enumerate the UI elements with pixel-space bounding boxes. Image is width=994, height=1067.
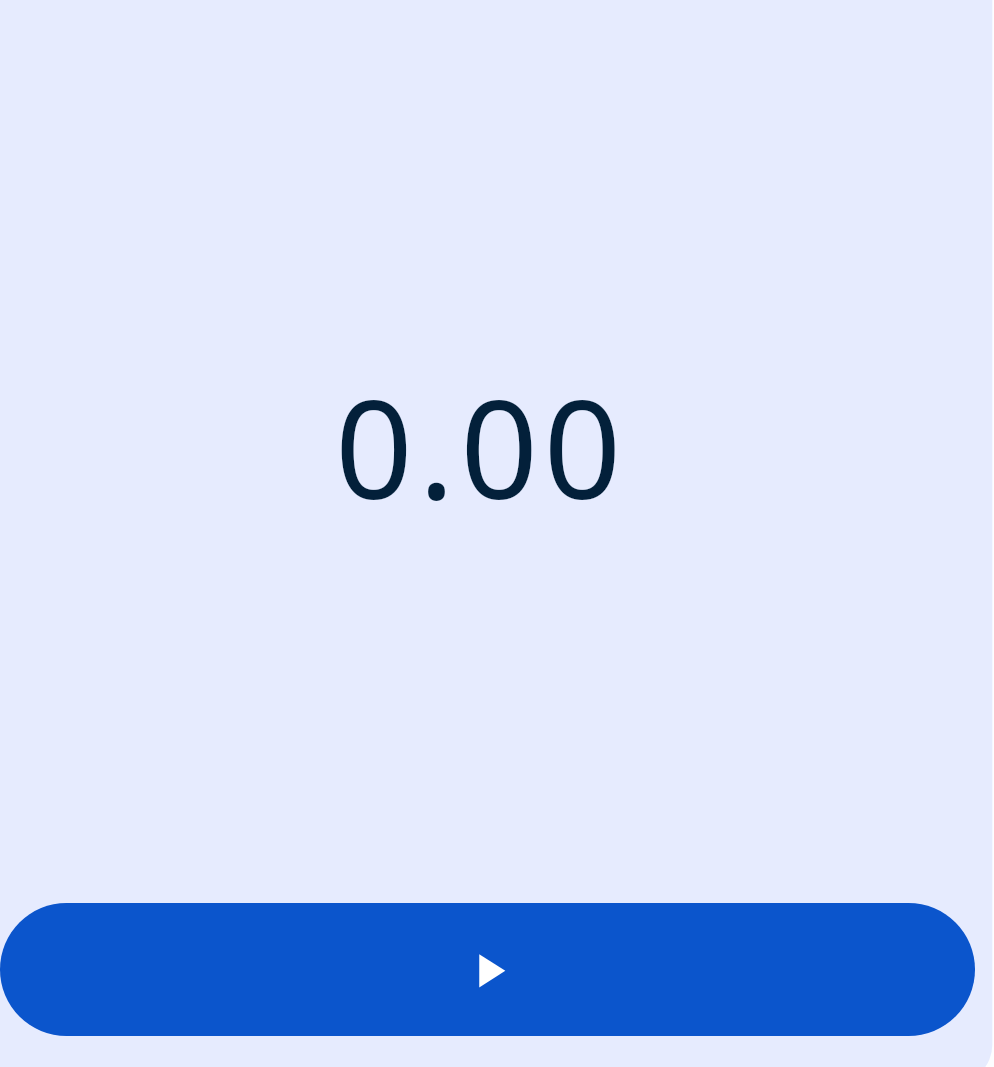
button[interactable]: Start bbox=[0, 903, 975, 1036]
staticText: 0.00 bbox=[335, 354, 627, 539]
